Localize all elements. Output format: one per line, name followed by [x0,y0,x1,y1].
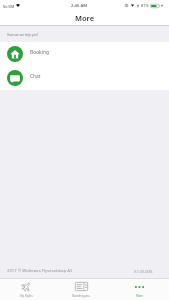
button[interactable]: Chat [0,66,169,90]
other: Boarding pass [75,282,88,291]
staticText: 0.7.39-3336 [134,269,153,274]
staticText: 81% [141,3,149,8]
staticText: Boarding pass [72,294,90,298]
other: Chat [7,70,23,86]
other: More [135,282,144,291]
staticText: More [136,294,143,298]
button[interactable]: Booking [0,42,169,66]
staticText: 2:46 AM [71,3,88,9]
other: My Flights [22,282,31,291]
button[interactable]: Boarding pass [53,279,109,300]
staticText: How can we help you? [7,33,39,37]
button[interactable]: More [109,279,169,300]
button[interactable]: My Flights [0,279,53,300]
staticText: 2017 © Widerøes Flyveselskap AS [7,268,73,274]
staticText: Booking [30,49,50,56]
other: Booking [7,46,23,62]
staticText: Chat [30,73,41,80]
staticText: My Flights [20,294,33,298]
staticText: No SIM [3,4,15,8]
staticText: More [75,13,95,23]
